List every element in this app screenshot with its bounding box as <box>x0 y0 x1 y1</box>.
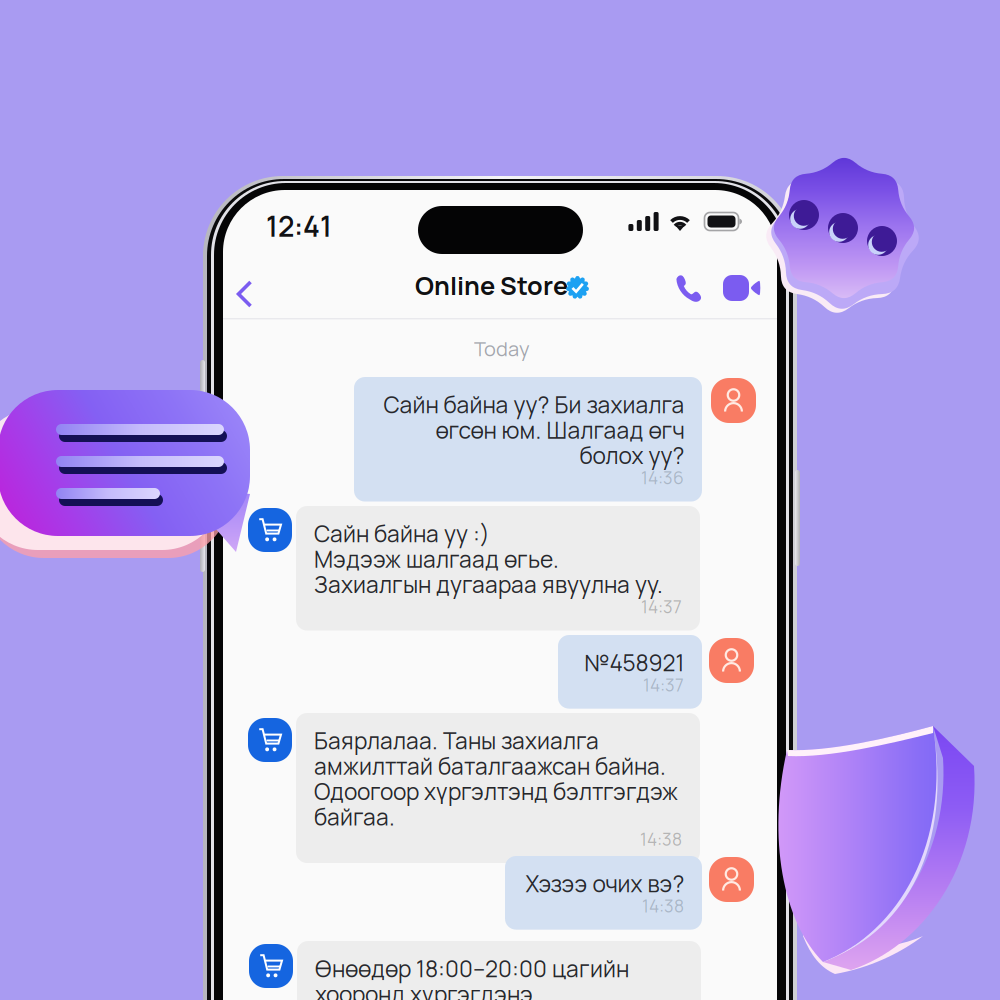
staticText: Хэзээ очих вэ? <box>525 868 684 899</box>
staticText: 12:41 <box>266 207 332 245</box>
staticText: 14:38 <box>640 827 682 851</box>
button[interactable]: Back <box>228 272 261 316</box>
staticText: №458921 <box>584 647 684 678</box>
staticText: Сайн байна уу? Би захиалга өгсөн юм. Шал… <box>383 389 684 471</box>
staticText: Today <box>474 335 530 362</box>
staticText: 14:38 <box>642 894 684 918</box>
button[interactable]: Call <box>669 269 708 308</box>
staticText: Online Store <box>415 268 568 303</box>
staticText: 14:37 <box>641 595 682 619</box>
staticText: 14:37 <box>643 673 684 697</box>
button[interactable]: Video call <box>712 270 760 306</box>
staticText: Сайн байна уу :) Мэдээж шалгаад өгье. За… <box>314 518 663 600</box>
staticText: 14:36 <box>641 466 684 490</box>
staticText: Баярлалаа. Таны захиалга амжилттай батал… <box>314 725 678 832</box>
staticText: Өнөөдөр 18:00–20:00 цагийн хооронд хүргэ… <box>315 953 629 1000</box>
